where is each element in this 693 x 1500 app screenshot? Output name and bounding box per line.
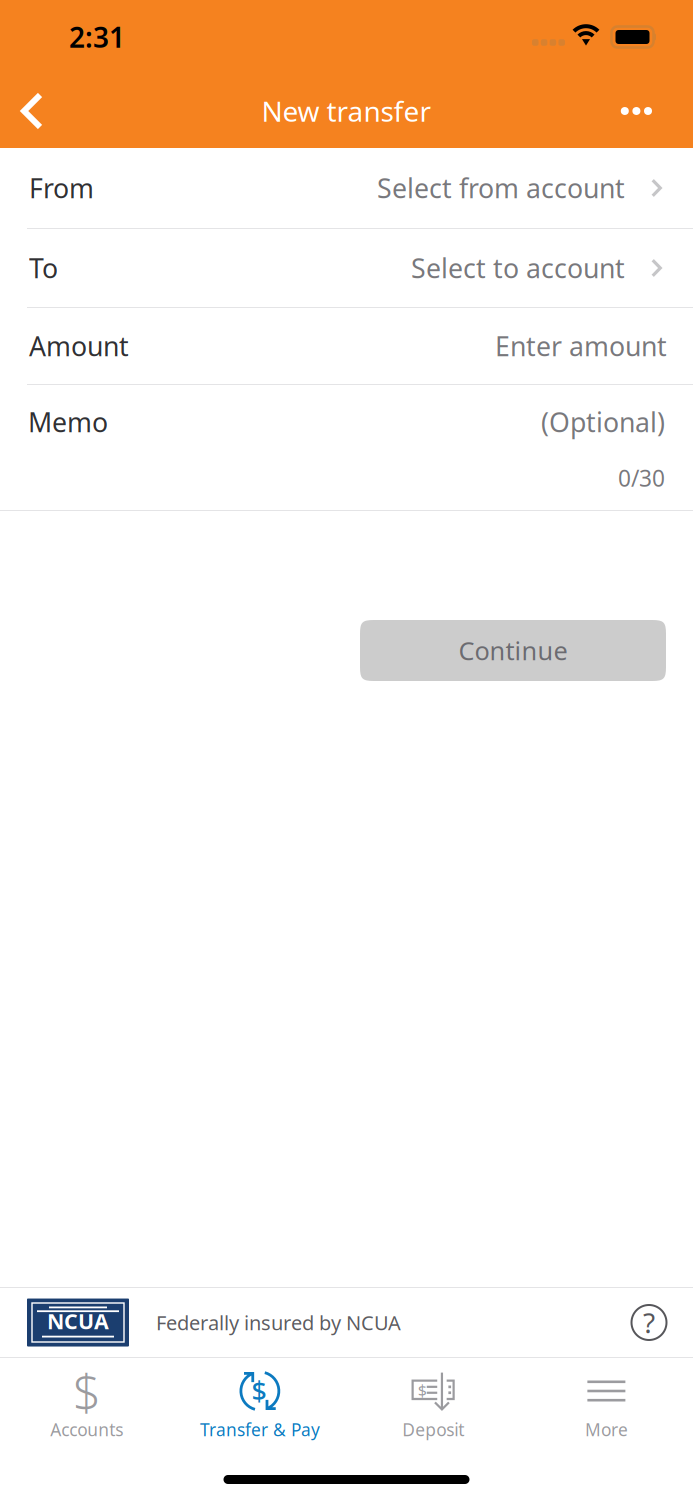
staticText: $ xyxy=(73,1358,101,1424)
staticText: To xyxy=(29,250,58,286)
button[interactable]: More options xyxy=(594,74,693,148)
staticText: Accounts xyxy=(50,1418,123,1441)
staticText: ? xyxy=(643,1304,655,1341)
staticText: From xyxy=(29,170,94,206)
button[interactable]: To xyxy=(0,229,693,307)
staticText: 2:31 xyxy=(69,18,125,56)
button[interactable]: $ xyxy=(0,1358,173,1454)
button[interactable]: From xyxy=(0,148,693,228)
button[interactable]: Memo xyxy=(0,385,693,510)
staticText: (Optional) xyxy=(541,404,665,440)
staticText: $ xyxy=(251,1373,266,1409)
button[interactable]: $ xyxy=(173,1358,346,1454)
staticText: NCUA xyxy=(47,1307,109,1335)
button[interactable]: Continue xyxy=(360,620,666,681)
staticText: Federally insured by NCUA xyxy=(156,1309,401,1336)
button[interactable]: Back xyxy=(0,74,69,148)
staticText: Amount xyxy=(29,328,129,364)
staticText: Transfer & Pay xyxy=(200,1418,320,1441)
button[interactable]: $ xyxy=(346,1358,520,1454)
button[interactable]: More xyxy=(520,1358,693,1454)
staticText: Deposit xyxy=(402,1418,464,1441)
staticText: New transfer xyxy=(261,92,431,130)
staticText: 0/30 xyxy=(618,463,665,493)
staticText: $ xyxy=(418,1379,427,1401)
staticText: Memo xyxy=(28,404,108,440)
staticText: Select from account xyxy=(377,170,625,206)
button[interactable]: Amount xyxy=(0,308,693,384)
staticText: More xyxy=(585,1418,628,1441)
staticText: Continue xyxy=(458,634,567,667)
button[interactable]: Help xyxy=(625,1298,673,1346)
staticText: Enter amount xyxy=(495,328,667,364)
staticText: Select to account xyxy=(411,250,625,286)
